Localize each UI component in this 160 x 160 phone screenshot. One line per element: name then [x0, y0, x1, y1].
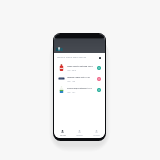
staticText: Frosch Baby Detergent 1.5 L — [67, 87, 93, 90]
button[interactable]: Search or scan to add to your list — [54, 53, 105, 62]
staticText: Heinz Tomato Ketchup 400 g — [67, 65, 93, 68]
button[interactable]: Account — [88, 126, 105, 138]
staticText: 1 pc | 1.5 L — [67, 91, 76, 93]
staticText: Search or scan to add to your list — [57, 56, 99, 59]
staticText: My lists — [60, 134, 66, 136]
staticText: Account — [93, 134, 100, 136]
button[interactable]: Add Heinz Tomato Ketchup 400 g — [97, 66, 101, 70]
button[interactable]: Lavazza Coffee Filtro 1 kg — [54, 73, 105, 84]
button[interactable]: Frosch Baby Detergent 1.5 L — [54, 84, 105, 95]
button[interactable]: Scan barcode — [99, 57, 101, 59]
button[interactable]: Add Frosch Baby Detergent 1.5 L — [97, 88, 101, 92]
button[interactable]: Add Lavazza Coffee Filtro 1 kg — [97, 77, 101, 81]
button[interactable]: My lists — [54, 126, 71, 138]
staticText: 1 pc | 400 g — [67, 69, 76, 71]
button[interactable]: Heinz Tomato Ketchup 400 g — [54, 62, 105, 73]
staticText: 1 pc | 1 kg — [67, 80, 75, 82]
staticText: Recipes — [76, 134, 83, 136]
button[interactable]: Recipes — [71, 126, 88, 138]
staticText: Lavazza Coffee Filtro 1 kg — [67, 76, 90, 79]
